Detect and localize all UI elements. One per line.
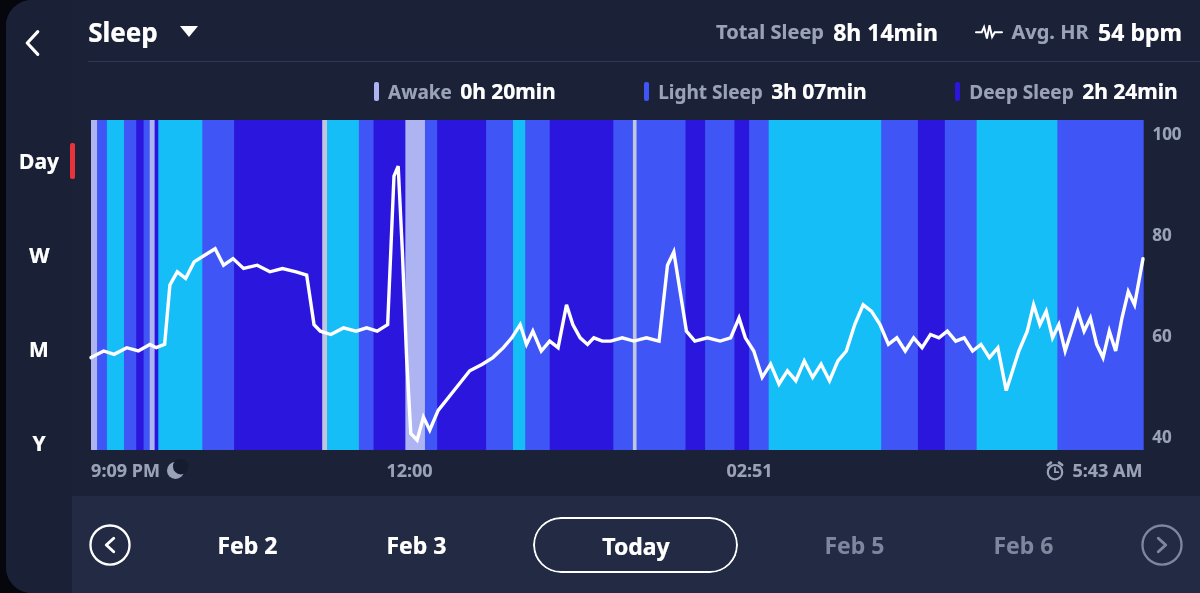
staticText: 5:43 AM [1072, 458, 1143, 483]
staticText: Feb 2 [217, 529, 278, 560]
button[interactable]: Feb 5 [802, 519, 907, 570]
button[interactable]: M [6, 328, 72, 370]
staticText: 2h 24min [1082, 77, 1178, 106]
button[interactable]: Previous days [88, 523, 132, 567]
button[interactable]: Sleep [86, 14, 200, 49]
button[interactable]: W [6, 234, 72, 276]
button[interactable]: Y [6, 422, 72, 464]
staticText: Avg. HR [1011, 18, 1089, 45]
staticText: 0h 20min [460, 77, 556, 106]
staticText: 9:09 PM [91, 458, 160, 483]
staticText: 80 [1152, 223, 1172, 246]
staticText: M [29, 335, 49, 364]
button[interactable]: Feb 6 [971, 519, 1076, 570]
button[interactable]: Feb 3 [364, 519, 469, 570]
staticText: Feb 6 [993, 529, 1054, 560]
staticText: 40 [1152, 425, 1172, 448]
staticText: 60 [1152, 324, 1172, 347]
staticText: Feb 3 [386, 529, 447, 560]
button[interactable]: Back [8, 18, 58, 68]
button[interactable]: Light Sleep [642, 77, 869, 106]
staticText: Day [19, 147, 59, 176]
button[interactable]: Total Sleep [716, 16, 938, 47]
staticText: 54 bpm [1098, 16, 1182, 47]
staticText: 8h 14min [833, 16, 938, 47]
staticText: Total Sleep [716, 18, 824, 45]
staticText: 12:00 [386, 458, 433, 483]
button[interactable]: Feb 2 [195, 519, 300, 570]
button[interactable]: Next days [1140, 523, 1184, 567]
staticText: 3h 07min [771, 77, 867, 106]
staticText: Deep Sleep [969, 79, 1074, 105]
staticText: W [29, 241, 50, 270]
staticText: Feb 5 [824, 529, 885, 560]
button[interactable]: Deep Sleep [953, 77, 1180, 106]
staticText: 100 [1152, 122, 1182, 145]
button[interactable]: Avg. HR [976, 16, 1182, 47]
button[interactable]: Awake [372, 77, 558, 106]
staticText: Sleep [88, 14, 158, 49]
staticText: 02:51 [726, 458, 773, 483]
staticText: Light Sleep [658, 79, 763, 105]
staticText: Awake [388, 79, 452, 105]
button[interactable]: Day [6, 140, 72, 182]
button[interactable]: Today [533, 517, 738, 573]
staticText: Y [32, 429, 46, 458]
staticText: Today [602, 530, 670, 561]
